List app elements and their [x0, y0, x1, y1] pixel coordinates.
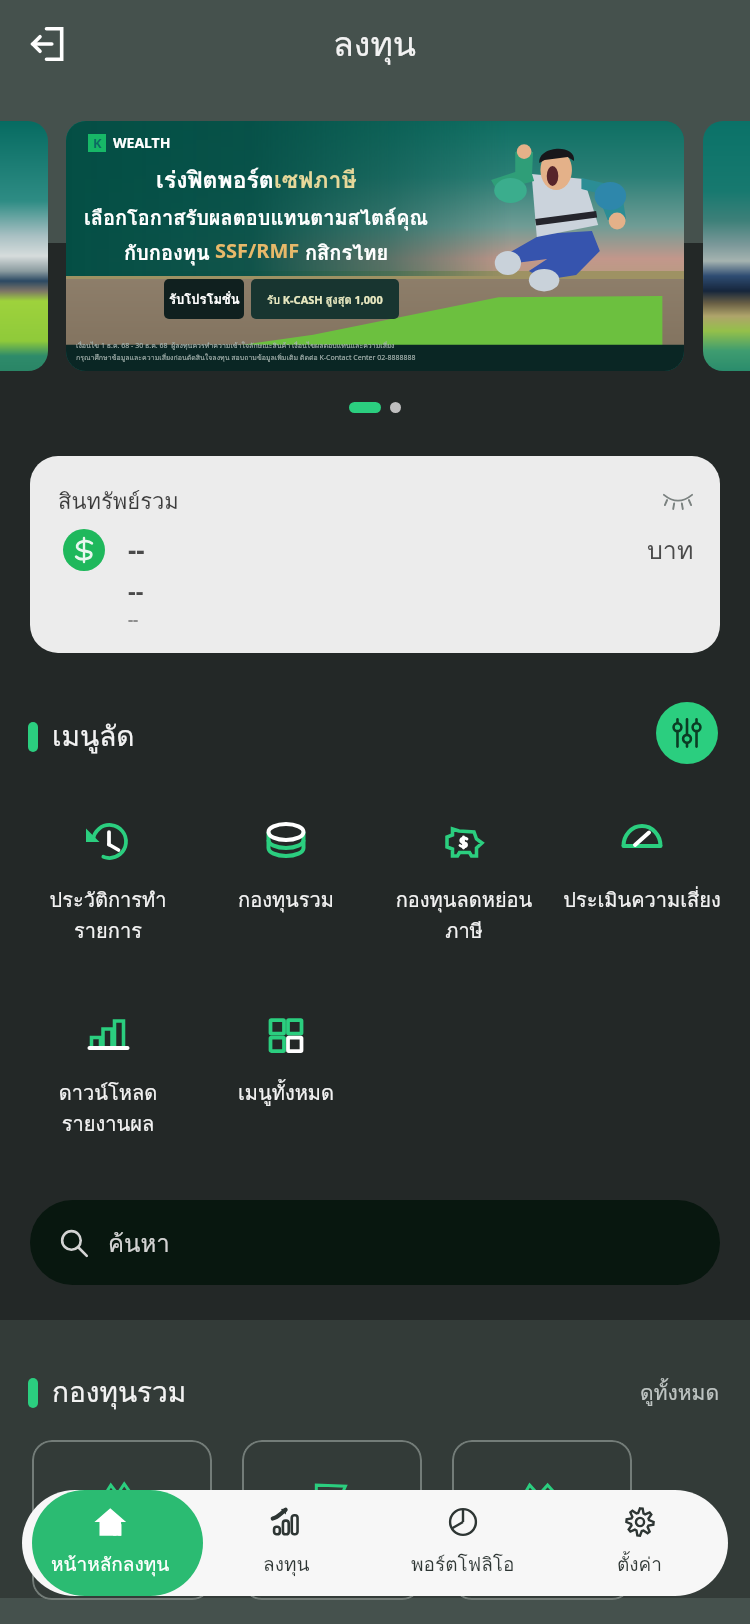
- staticText: ลงทุน: [263, 1549, 310, 1579]
- button[interactable]: ค้นหา: [30, 1200, 720, 1285]
- staticText: ประเมินความเสี่ยง: [553, 884, 731, 916]
- staticText: เมนูลัด: [52, 714, 135, 759]
- button[interactable]: [452, 1440, 632, 1600]
- button[interactable]: Toggle balance visibility: [654, 476, 702, 524]
- staticText: เซฟภาษี: [274, 162, 357, 199]
- staticText: กองทุนลดหย่อน ภาษี: [375, 884, 553, 947]
- staticText: กสิกรไทย: [305, 237, 389, 269]
- button[interactable]: Exit: [17, 13, 79, 75]
- button[interactable]: [242, 1440, 422, 1600]
- staticText: บาท: [647, 530, 694, 570]
- staticText: หน้าหลักลงทุน: [51, 1549, 170, 1579]
- staticText: สินทรัพย์รวม: [58, 484, 179, 519]
- staticText: ประวัติการทำ รายการ: [19, 884, 197, 947]
- staticText: รับโปรโมชั่น: [169, 289, 240, 310]
- button[interactable]: พอร์ตโฟลิโอ: [374, 1490, 551, 1596]
- staticText: ตั้งค่า: [617, 1549, 662, 1579]
- button[interactable]: ประเมินความเสี่ยง: [553, 816, 731, 916]
- button[interactable]: เมนูทั้งหมด: [197, 1009, 375, 1109]
- staticText: K: [93, 134, 102, 152]
- staticText: ดูทั้งหมด: [640, 1376, 720, 1409]
- button[interactable]: ลงทุน: [198, 1490, 374, 1596]
- button[interactable]: Customize shortcuts: [656, 702, 718, 764]
- staticText: เร่งฟิตพอร์ต: [156, 162, 274, 199]
- staticText: ลงทุน: [333, 17, 417, 71]
- staticText: --: [128, 574, 144, 607]
- staticText: พอร์ตโฟลิโอ: [411, 1549, 515, 1579]
- button[interactable]: [32, 1440, 212, 1600]
- staticText: --: [128, 532, 145, 567]
- button[interactable]: ประวัติการทำ รายการ: [19, 816, 197, 947]
- button[interactable]: K: [66, 121, 684, 371]
- button[interactable]: กองทุนรวม: [197, 816, 375, 916]
- button[interactable]: สินทรัพย์รวม: [30, 456, 720, 653]
- staticText: SSF/RMF: [215, 237, 305, 264]
- button[interactable]: หน้าหลักลงทุน: [22, 1490, 198, 1596]
- staticText: รับ K-CASH สูงสุด 1,000: [267, 291, 383, 308]
- staticText: เงื่อนไข 1 ธ.ค. 68 - 30 ธ.ค. 68 ผู้ลงทุน…: [76, 340, 416, 363]
- staticText: --: [128, 608, 139, 630]
- staticText: เมนูทั้งหมด: [197, 1077, 375, 1109]
- button[interactable]: ตั้งค่า: [551, 1490, 728, 1596]
- staticText: เลือกโอกาสรับผลตอบแทนตามสไตล์คุณ: [77, 202, 435, 234]
- staticText: กองทุนรวม: [197, 884, 375, 916]
- staticText: กับกองทุน: [124, 237, 215, 269]
- button[interactable]: ดูทั้งหมด: [636, 1372, 724, 1413]
- button[interactable]: ดาวน์โหลด รายงานผล: [19, 1009, 197, 1140]
- staticText: ค้นหา: [108, 1224, 170, 1262]
- staticText: กองทุนรวม: [52, 1370, 187, 1415]
- staticText: ดาวน์โหลด รายงานผล: [19, 1077, 197, 1140]
- button[interactable]: [0, 121, 48, 371]
- staticText: WEALTH: [113, 133, 171, 152]
- button[interactable]: [703, 121, 750, 371]
- button[interactable]: กองทุนลดหย่อน ภาษี: [375, 816, 553, 947]
